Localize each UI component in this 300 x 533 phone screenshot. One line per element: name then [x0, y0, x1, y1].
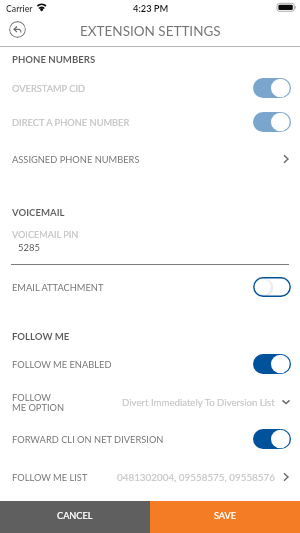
button[interactable]: FOLLOW ME ENABLED — [253, 354, 291, 374]
staticText: EMAIL ATTACHMENT — [12, 282, 104, 293]
staticText: VOICEMAIL PIN — [12, 229, 79, 240]
button[interactable]: EMAIL ATTACHMENT — [0, 270, 300, 304]
button[interactable]: SAVE — [150, 501, 300, 533]
button[interactable]: Back — [9, 21, 26, 38]
staticText: SAVE — [214, 510, 237, 521]
staticText: 4:23 PM — [133, 3, 169, 14]
staticText: FOLLOW ME LIST — [12, 472, 88, 483]
button[interactable]: ASSIGNED PHONE NUMBERS — [0, 142, 300, 176]
staticText: 5285 — [18, 242, 41, 253]
staticText: FORWARD CLI ON NET DIVERSION — [12, 434, 164, 445]
button[interactable]: FORWARD CLI ON NET DIVERSION — [253, 429, 291, 449]
staticText: OVERSTAMP CID — [12, 83, 86, 94]
button[interactable]: DIRECT A PHONE NUMBER — [0, 105, 300, 139]
button[interactable]: DIRECT A PHONE NUMBER — [253, 112, 291, 132]
staticText: EXTENSION SETTINGS — [80, 23, 221, 39]
staticText: Carrier — [6, 3, 33, 13]
staticText: ASSIGNED PHONE NUMBERS — [12, 154, 140, 165]
staticText: VOICEMAIL — [12, 207, 65, 219]
staticText: PHONE NUMBERS — [12, 54, 96, 66]
staticText: FOLLOW ME ENABLED — [12, 359, 112, 370]
button[interactable]: EMAIL ATTACHMENT — [253, 277, 291, 297]
button[interactable]: CANCEL — [0, 501, 150, 533]
button[interactable]: OVERSTAMP CID — [0, 71, 300, 105]
button[interactable]: FORWARD CLI ON NET DIVERSION — [0, 422, 300, 456]
staticText: FOLLOW ME — [12, 331, 70, 343]
button[interactable]: FOLLOW ME LIST — [0, 459, 300, 495]
staticText: 0481302004, 09558575, 09558576 — [117, 471, 275, 483]
button[interactable]: 5285 — [0, 240, 300, 255]
button[interactable]: FOLLOW ME ENABLED — [0, 347, 300, 381]
button[interactable]: FOLLOW ME OPTION — [0, 384, 300, 420]
staticText: CANCEL — [57, 510, 93, 521]
staticText: Divert Immediately To Diversion List — [122, 396, 275, 408]
staticText: FOLLOW ME OPTION — [12, 392, 65, 413]
staticText: DIRECT A PHONE NUMBER — [12, 117, 130, 128]
button[interactable]: OVERSTAMP CID — [253, 78, 291, 98]
